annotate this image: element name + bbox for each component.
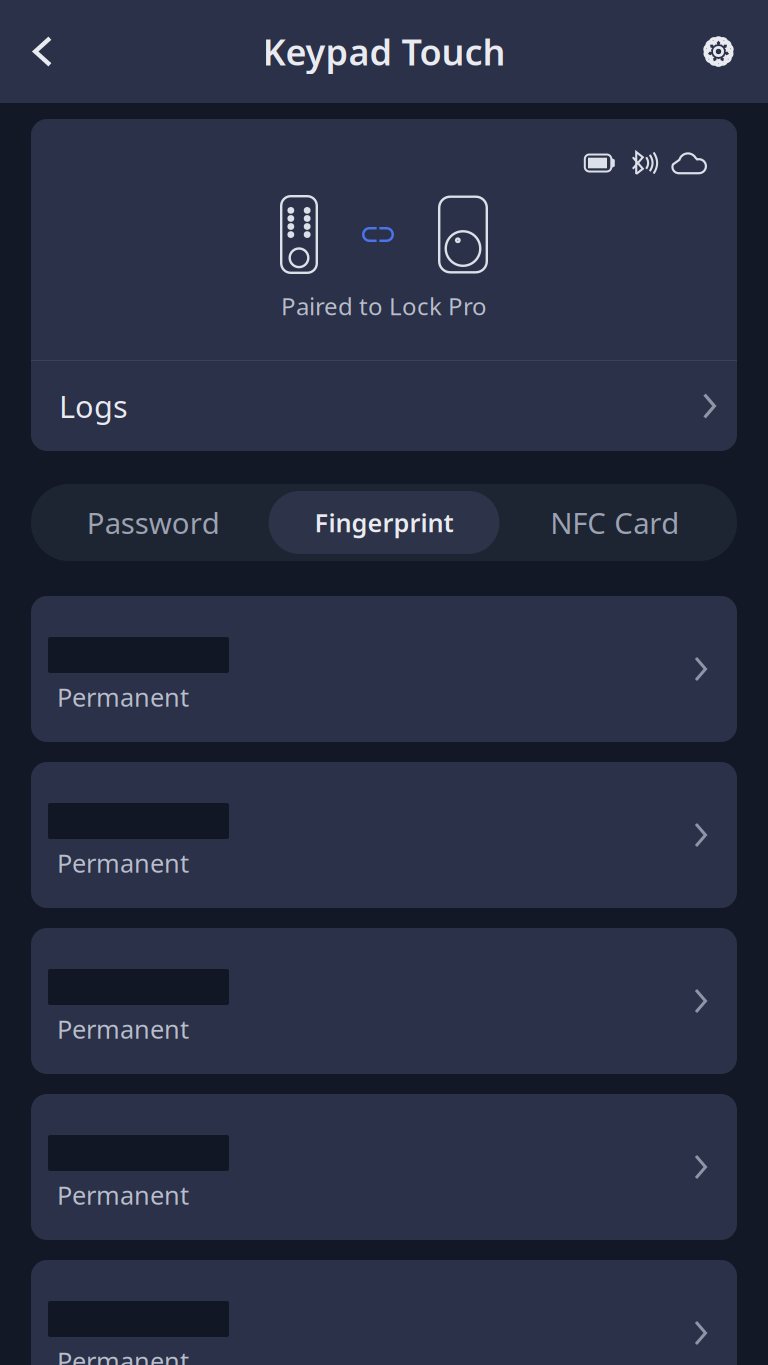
staticText: Logs [59,386,128,426]
staticText: Permanent [57,1178,189,1212]
staticText: Permanent [57,1344,189,1365]
button[interactable]: Fingerprint [269,491,499,554]
staticText: Password [87,503,220,542]
staticText: Fingerprint [314,506,453,539]
button[interactable]: Permanent [31,762,737,908]
button[interactable]: Settings [676,0,768,103]
staticText: Permanent [57,1012,189,1046]
staticText: Permanent [57,846,189,880]
staticText: Keypad Touch [262,28,505,75]
button[interactable]: Permanent [31,1094,737,1240]
button[interactable]: Permanent [31,928,737,1074]
staticText: Permanent [57,680,189,714]
button[interactable]: Password [38,491,269,554]
button[interactable]: Permanent [31,596,737,742]
button[interactable]: NFC Card [499,491,730,554]
staticText: NFC Card [550,503,679,542]
button[interactable]: Permanent [31,1260,737,1365]
button[interactable]: Back [0,0,78,103]
staticText: Paired to Lock Pro [281,290,487,322]
button[interactable]: Logs [31,361,737,451]
